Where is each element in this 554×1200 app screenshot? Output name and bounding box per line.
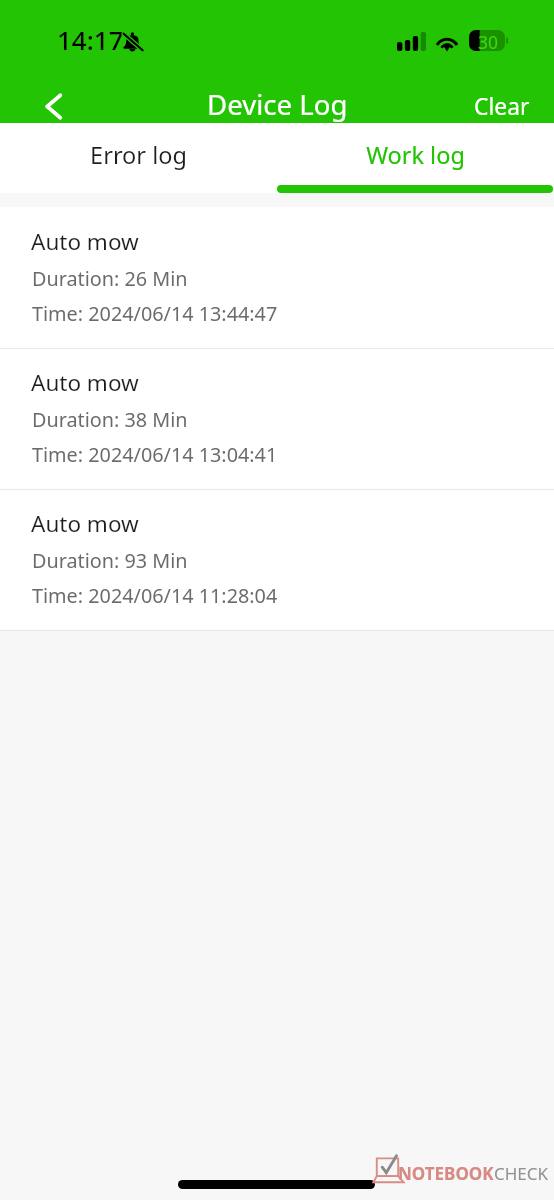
button[interactable]: Work log — [277, 123, 554, 193]
staticText: 30 — [478, 30, 499, 51]
button[interactable]: Clear — [452, 86, 552, 126]
staticText: Time: 2024/06/14 13:04:41 — [32, 441, 278, 468]
button[interactable]: Auto mow — [0, 208, 554, 348]
staticText: Work log — [366, 139, 465, 171]
staticText: Time: 2024/06/14 11:28:04 — [32, 582, 278, 609]
staticText: Duration: 93 Min — [32, 547, 188, 574]
button[interactable]: Error log — [0, 123, 277, 193]
staticText: Device Log — [207, 85, 348, 123]
staticText: Error log — [90, 139, 187, 171]
button[interactable]: Auto mow — [0, 349, 554, 489]
button[interactable]: Back — [20, 85, 86, 128]
staticText: Time: 2024/06/14 13:44:47 — [32, 300, 278, 327]
staticText: CHECK — [494, 1162, 549, 1185]
staticText: Auto mow — [31, 226, 139, 257]
staticText: Duration: 26 Min — [32, 265, 188, 292]
staticText: Auto mow — [31, 508, 139, 539]
staticText: Auto mow — [31, 367, 139, 398]
button[interactable]: Auto mow — [0, 490, 554, 630]
staticText: Clear — [474, 91, 530, 122]
staticText: 14:17 — [57, 22, 124, 57]
staticText: Duration: 38 Min — [32, 406, 188, 433]
staticText: NOTEBOOK — [398, 1162, 494, 1185]
